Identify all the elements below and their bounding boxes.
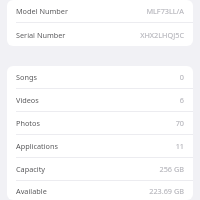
staticText: Capacity bbox=[16, 164, 46, 174]
button[interactable]: Videos bbox=[7, 89, 193, 111]
button[interactable]: Photos bbox=[7, 112, 193, 134]
staticText: Available bbox=[16, 186, 47, 196]
staticText: Model Number bbox=[16, 6, 68, 16]
button[interactable]: Serial Number bbox=[7, 23, 193, 46]
staticText: 0 bbox=[179, 72, 184, 82]
staticText: 6 bbox=[179, 95, 184, 105]
staticText: MLF73LL/A bbox=[146, 6, 184, 16]
button[interactable]: Applications bbox=[7, 135, 193, 157]
staticText: Applications bbox=[16, 141, 58, 151]
button[interactable]: Model Number bbox=[7, 0, 193, 22]
button[interactable]: Capacity bbox=[7, 158, 193, 180]
staticText: 256 GB bbox=[159, 164, 184, 174]
staticText: Videos bbox=[16, 95, 39, 105]
staticText: XHX2LHQJ5C bbox=[140, 30, 184, 40]
staticText: 223.69 GB bbox=[149, 186, 184, 196]
button[interactable]: Songs bbox=[7, 66, 193, 88]
staticText: 70 bbox=[175, 118, 184, 128]
staticText: 11 bbox=[175, 141, 184, 151]
staticText: Serial Number bbox=[16, 30, 66, 40]
button[interactable]: Available bbox=[7, 181, 193, 200]
staticText: Photos bbox=[16, 118, 40, 128]
staticText: Songs bbox=[16, 72, 37, 82]
